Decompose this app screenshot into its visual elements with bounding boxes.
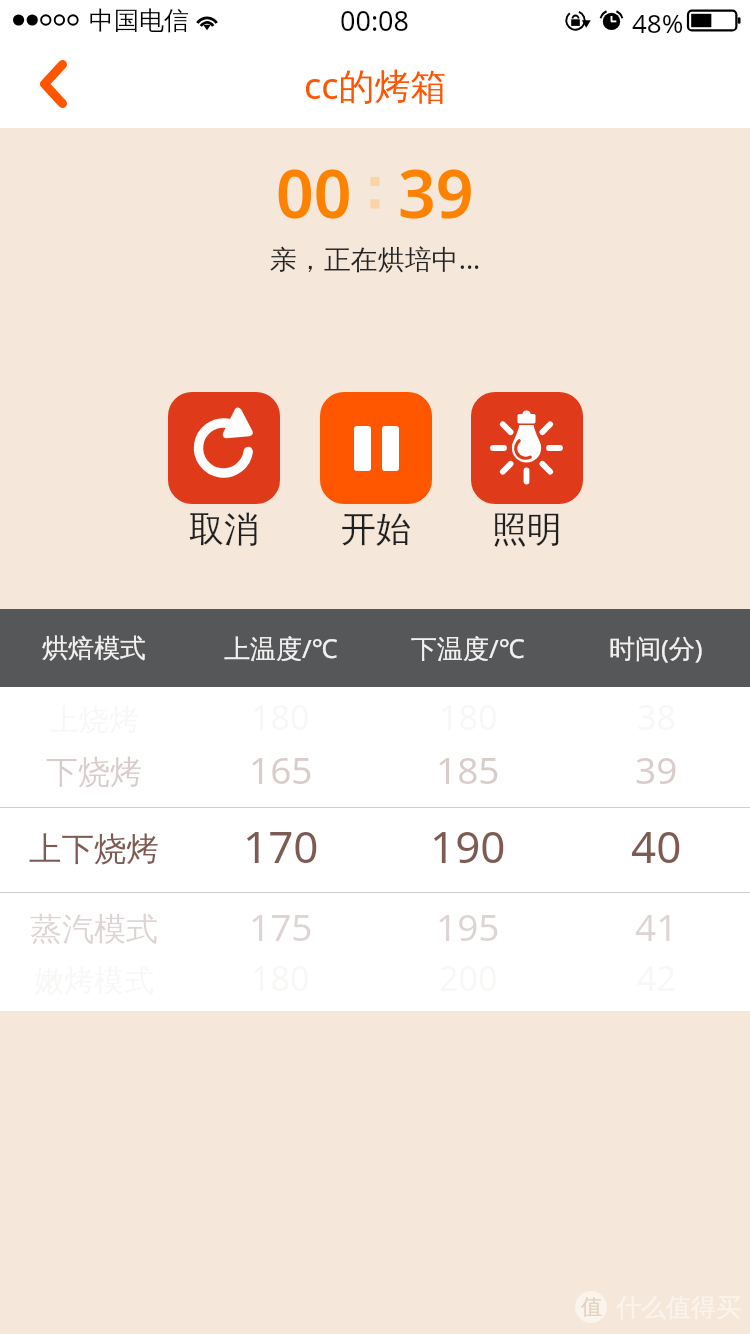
staticText: 185	[436, 744, 500, 794]
button[interactable]: 下温度/℃	[374, 609, 562, 687]
staticText: 195	[436, 901, 500, 951]
staticText: 上下烧烤	[29, 829, 159, 870]
staticText: 42	[637, 955, 676, 1001]
staticText: 00:08	[340, 2, 410, 39]
button[interactable]: 蒸汽模式	[0, 896, 750, 956]
staticText: 亲，正在烘培中...	[0, 240, 750, 277]
staticText: 00	[276, 147, 352, 237]
staticText: 中国电信	[89, 5, 189, 36]
staticText: 下温度/℃	[411, 630, 525, 666]
button[interactable]: 烘焙模式	[0, 609, 187, 687]
staticText: 40	[631, 816, 682, 876]
staticText: 嫩烤模式	[34, 962, 154, 1000]
staticText: 照明	[492, 507, 562, 551]
button[interactable]: 取消	[168, 392, 280, 551]
button[interactable]: 上温度/℃	[187, 609, 374, 687]
staticText: 41	[635, 901, 678, 951]
button[interactable]: 下烧烤	[0, 739, 750, 799]
staticText: 取消	[189, 507, 259, 551]
staticText: 39	[635, 744, 678, 794]
staticText: 180	[251, 955, 310, 1001]
staticText: 38	[637, 694, 676, 740]
staticText: 蒸汽模式	[30, 909, 158, 949]
staticText: 下烧烤	[46, 752, 142, 792]
staticText: 180	[439, 694, 498, 740]
staticText: 190	[430, 816, 506, 876]
staticText: 时间(分)	[609, 630, 703, 666]
staticText: 上烧烤	[49, 701, 139, 739]
staticText: 什么值得买	[616, 1292, 741, 1323]
staticText: 165	[249, 744, 313, 794]
button[interactable]: Back	[8, 46, 100, 122]
staticText: cc的烤箱	[304, 61, 447, 110]
staticText: 48%	[632, 5, 684, 40]
button[interactable]: 时间(分)	[562, 609, 750, 687]
staticText: 上温度/℃	[224, 630, 338, 666]
staticText: 值	[581, 1294, 602, 1320]
staticText: 烘焙模式	[42, 632, 146, 665]
staticText: 170	[243, 816, 319, 876]
staticText: 开始	[341, 507, 411, 551]
staticText: 175	[249, 901, 313, 951]
button[interactable]: 上下烧烤	[0, 816, 750, 876]
button[interactable]: 开始	[320, 392, 432, 551]
staticText: 200	[439, 955, 498, 1001]
staticText: 39	[398, 147, 474, 237]
staticText: 180	[251, 694, 310, 740]
button[interactable]: 照明	[471, 392, 583, 551]
